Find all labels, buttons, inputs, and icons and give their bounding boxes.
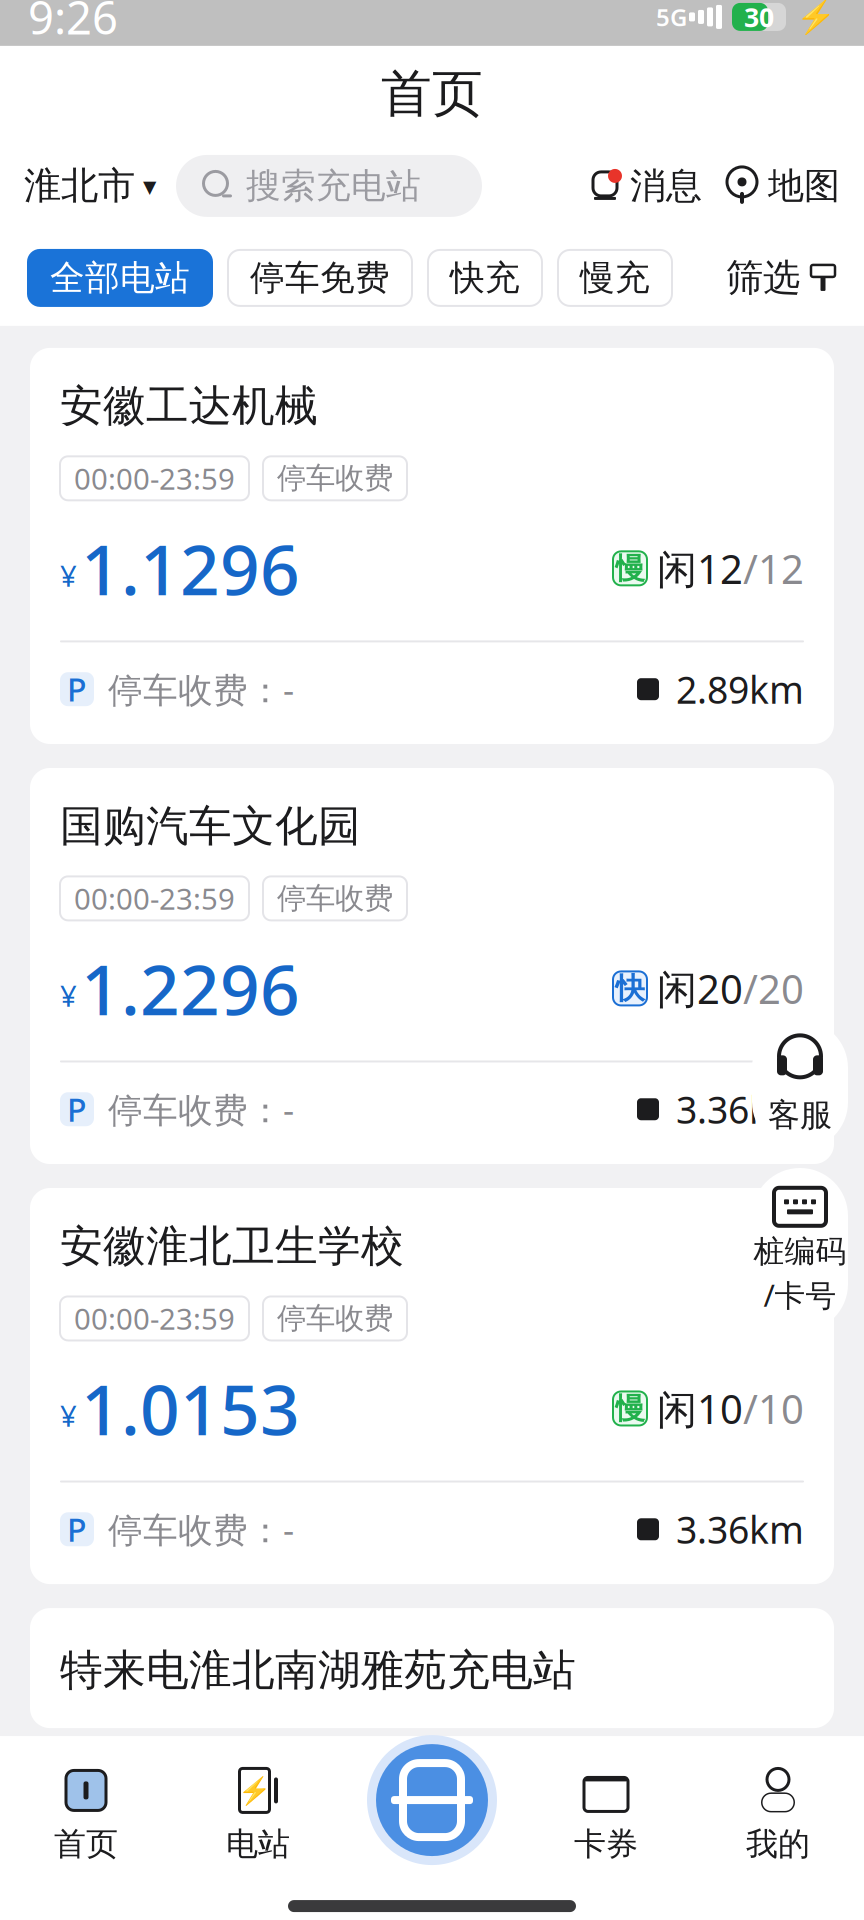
- staticText: 1.2296: [81, 942, 300, 1034]
- staticText: 停车收费: [277, 1300, 393, 1336]
- staticText: 首页: [54, 1824, 118, 1864]
- staticText: 安徽淮北卫生学校: [60, 1220, 404, 1272]
- staticText: 电站: [226, 1824, 290, 1864]
- staticText: ⚡: [238, 1775, 271, 1806]
- staticText: ⚡: [796, 0, 836, 35]
- staticText: 国购汽车文化园: [60, 800, 361, 852]
- staticText: ▾: [143, 171, 156, 201]
- button[interactable]: 快充: [428, 250, 542, 306]
- staticText: 闲12: [657, 542, 743, 595]
- staticText: 停车收费：-: [108, 1506, 294, 1552]
- staticText: 特来电淮北南湖雅苑充电站: [60, 1644, 576, 1696]
- staticText: 1.0153: [81, 1362, 300, 1454]
- staticText: 客服: [768, 1095, 832, 1135]
- staticText: 停车收费: [277, 460, 393, 496]
- button[interactable]: 我的: [692, 1760, 864, 1870]
- button[interactable]: 客服: [752, 1020, 848, 1150]
- staticText: 闲10: [657, 1382, 743, 1435]
- staticText: 停车收费: [277, 880, 393, 916]
- staticText: 停车收费：-: [108, 1086, 294, 1132]
- staticText: 消息: [630, 164, 702, 208]
- staticText: 00:00-23:59: [74, 459, 235, 498]
- button[interactable]: 停车免费: [228, 250, 412, 306]
- staticText: 5G: [656, 1, 687, 33]
- staticText: 搜索充电站: [246, 165, 421, 207]
- staticText: 地图: [768, 164, 840, 208]
- staticText: 全部电站: [50, 257, 190, 299]
- button[interactable]: 地图: [724, 156, 840, 216]
- staticText: P: [67, 668, 87, 710]
- staticText: 首页: [381, 63, 483, 125]
- staticText: 安徽工达机械: [60, 380, 318, 432]
- staticText: 2.89km: [676, 664, 804, 714]
- staticText: 筛选: [726, 255, 800, 301]
- staticText: 桩编码: [753, 1233, 846, 1270]
- staticText: /卡号: [763, 1274, 836, 1315]
- staticText: ¥: [60, 1396, 77, 1435]
- staticText: 淮北市: [24, 163, 135, 209]
- button[interactable]: 安徽工达机械: [30, 348, 834, 744]
- staticText: 9:26: [28, 0, 118, 47]
- button[interactable]: 卡券: [520, 1760, 692, 1870]
- staticText: /12: [743, 542, 804, 595]
- button[interactable]: 扫一扫: [367, 1735, 497, 1865]
- button[interactable]: ⚡: [172, 1760, 344, 1870]
- staticText: 停车收费：-: [108, 666, 294, 712]
- staticText: 快充: [450, 257, 520, 299]
- button[interactable]: 国购汽车文化园: [30, 768, 834, 1164]
- staticText: 30: [744, 0, 774, 35]
- staticText: ¥: [60, 976, 77, 1015]
- staticText: 3.36km: [676, 1504, 804, 1554]
- staticText: 我的: [746, 1824, 810, 1864]
- staticText: 停车免费: [250, 257, 390, 299]
- staticText: 卡券: [574, 1824, 638, 1864]
- staticText: 1.1296: [81, 522, 300, 614]
- staticText: 00:00-23:59: [74, 1299, 235, 1338]
- button[interactable]: 首页: [0, 1760, 172, 1870]
- button[interactable]: 全部电站: [28, 250, 212, 306]
- button[interactable]: 消息: [588, 156, 702, 216]
- button[interactable]: 慢充: [558, 250, 672, 306]
- staticText: /20: [743, 962, 804, 1015]
- staticText: 慢: [615, 1390, 644, 1426]
- button[interactable]: 筛选: [726, 247, 836, 309]
- button[interactable]: 桩编码: [752, 1168, 848, 1332]
- staticText: P: [67, 1508, 87, 1550]
- staticText: /10: [743, 1382, 804, 1435]
- staticText: 闲20: [657, 962, 743, 1015]
- staticText: 00:00-23:59: [74, 879, 235, 918]
- staticText: 慢: [615, 550, 644, 586]
- staticText: 快: [615, 970, 644, 1006]
- staticText: ¥: [60, 556, 77, 595]
- staticText: 慢充: [580, 257, 650, 299]
- button[interactable]: 淮北市: [24, 155, 156, 217]
- button[interactable]: 安徽淮北卫生学校: [30, 1188, 834, 1584]
- staticText: 3.36km: [676, 1084, 804, 1134]
- staticText: P: [67, 1088, 87, 1130]
- button[interactable]: 搜索充电站: [176, 155, 482, 217]
